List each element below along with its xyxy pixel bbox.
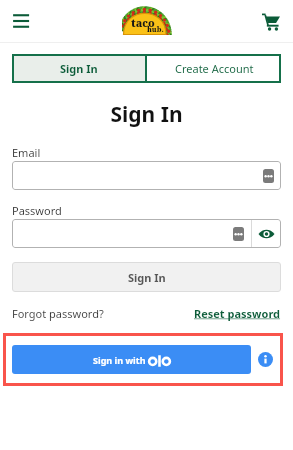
button[interactable]: Sign In <box>12 54 145 83</box>
staticText: Sign in with <box>93 354 146 366</box>
staticText: Create Account <box>175 61 254 76</box>
button[interactable]: Show password <box>12 219 281 248</box>
button[interactable]: Menu <box>9 8 33 34</box>
button[interactable]: Sign in with <box>12 345 251 374</box>
staticText: Sign In <box>128 270 166 285</box>
staticText: taco <box>131 16 155 30</box>
staticText: Reset password <box>194 306 281 321</box>
button[interactable]: Sign In <box>12 262 281 292</box>
button[interactable]: Show password <box>252 219 281 248</box>
staticText: Forgot password? <box>12 306 104 321</box>
staticText: Sign In <box>0 100 293 129</box>
staticText: Password <box>12 203 62 218</box>
staticText: Email <box>12 145 41 160</box>
staticText: Sign In <box>60 61 98 76</box>
button[interactable]: Create Account <box>147 54 281 83</box>
button[interactable]: Cart <box>262 11 280 31</box>
staticText: hub. <box>147 25 164 35</box>
button[interactable]: Reset password <box>194 306 281 321</box>
button[interactable] <box>12 161 281 190</box>
button[interactable]: Info <box>258 352 273 367</box>
